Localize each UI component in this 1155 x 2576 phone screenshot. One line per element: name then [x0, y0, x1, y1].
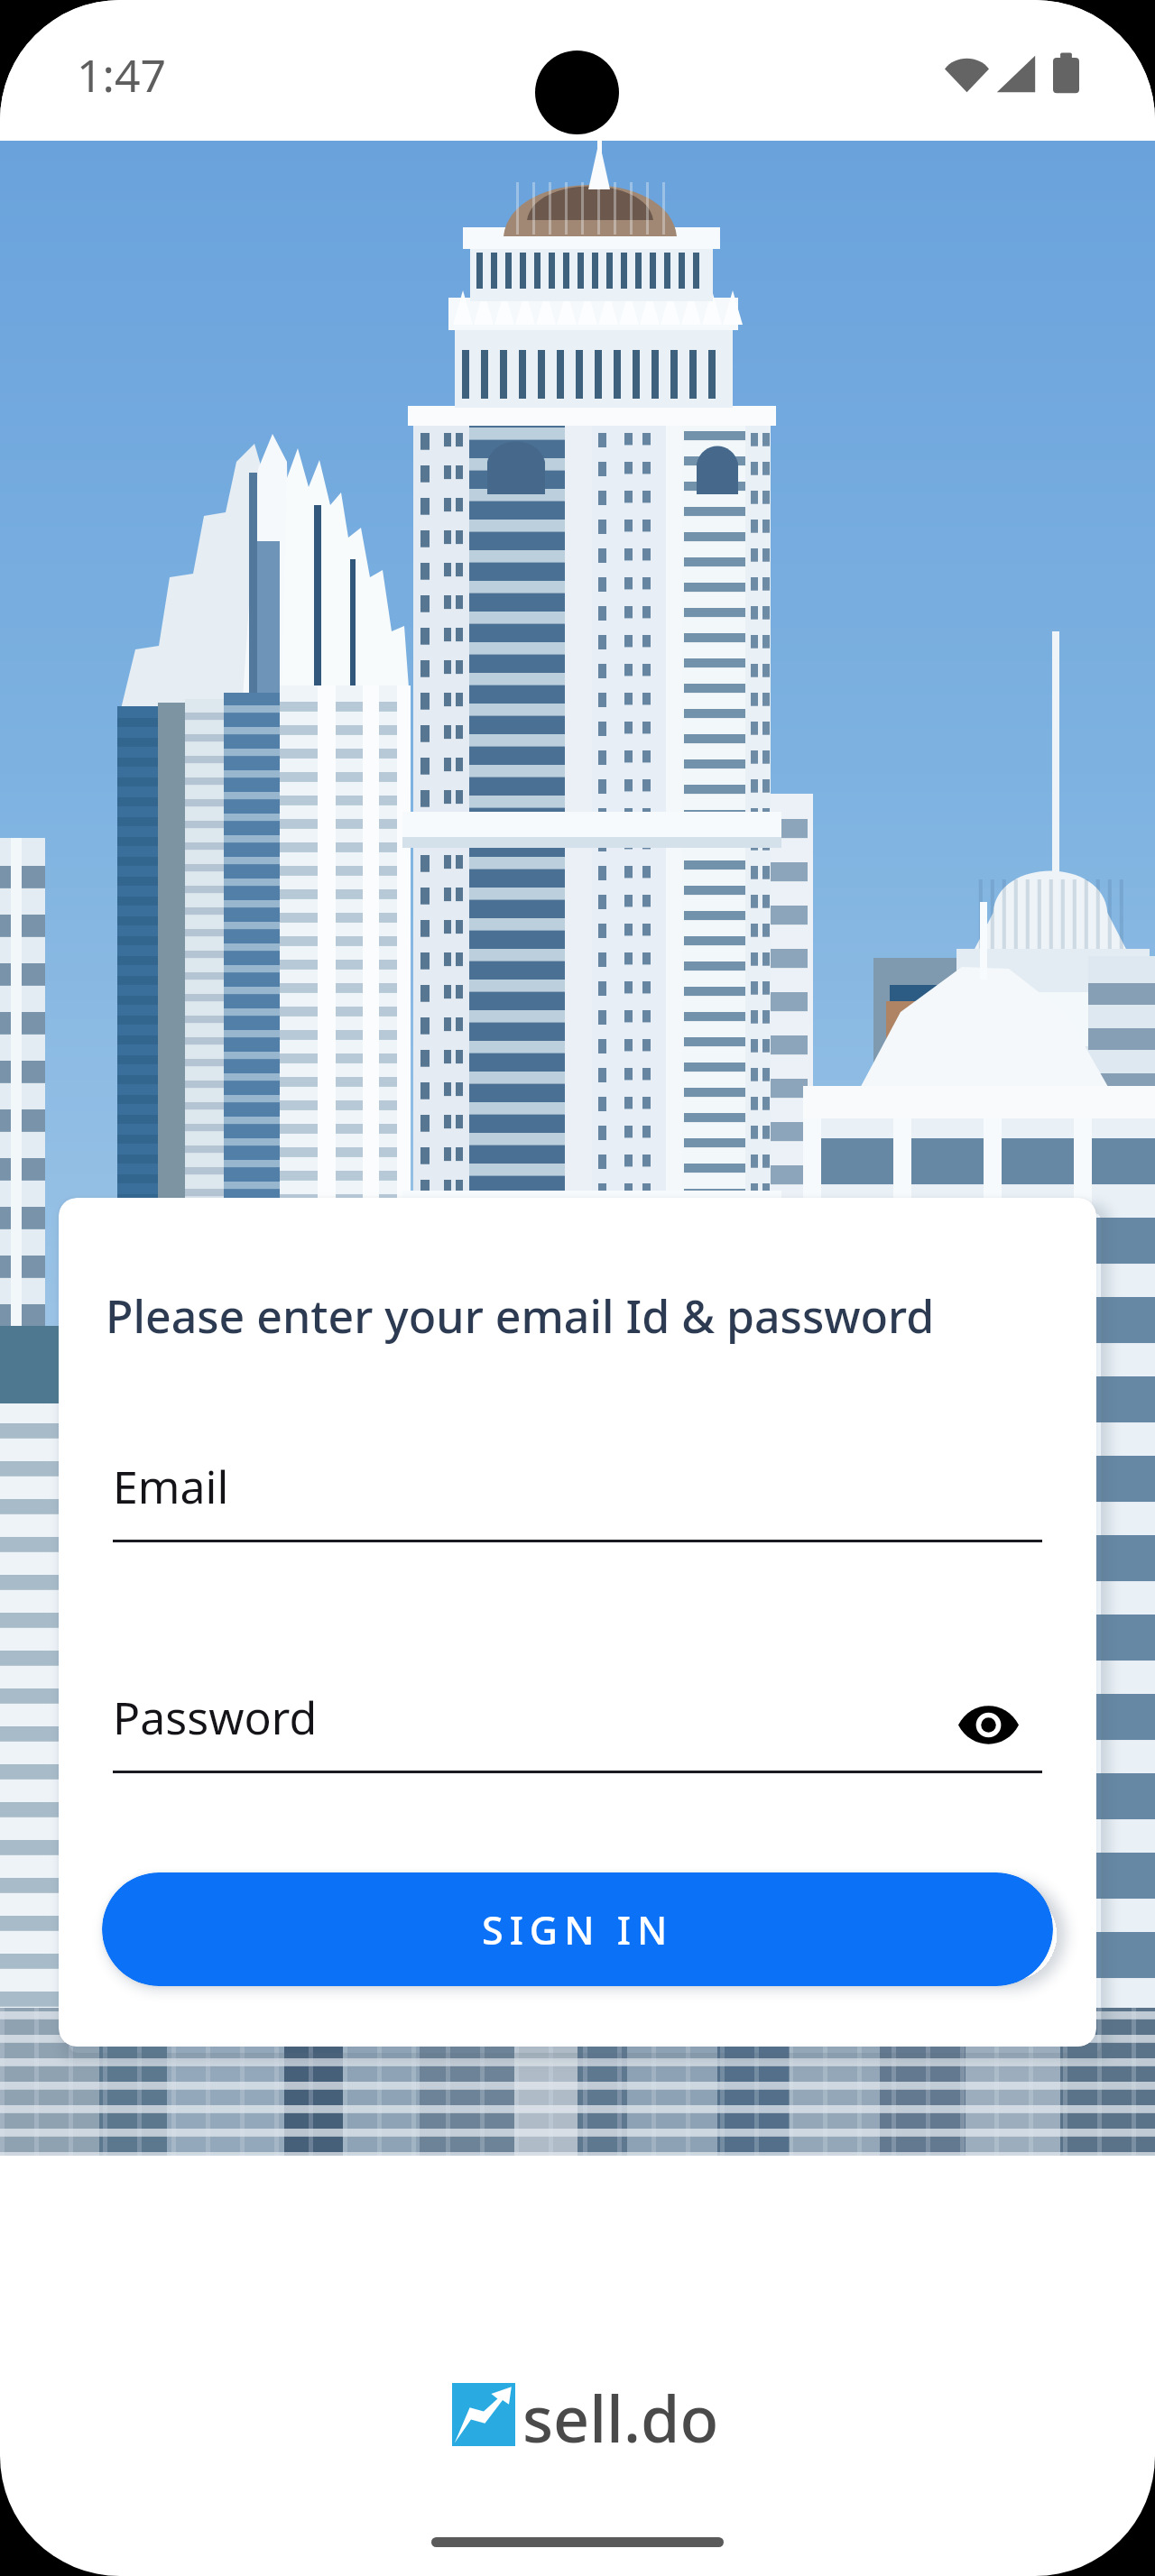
staticText: 1:47	[77, 44, 167, 106]
staticText: Please enter your email Id & password	[106, 1285, 935, 1347]
button[interactable]: Password	[113, 1684, 1042, 1773]
button[interactable]: SIGN IN	[102, 1872, 1053, 1986]
button[interactable]: Show password	[947, 1691, 1030, 1758]
staticText: SIGN IN	[482, 1903, 674, 1956]
staticText: sell.do	[522, 2375, 719, 2461]
staticText: Password	[113, 1687, 318, 1748]
button[interactable]: Email	[113, 1453, 1042, 1542]
staticText: Email	[113, 1456, 229, 1517]
